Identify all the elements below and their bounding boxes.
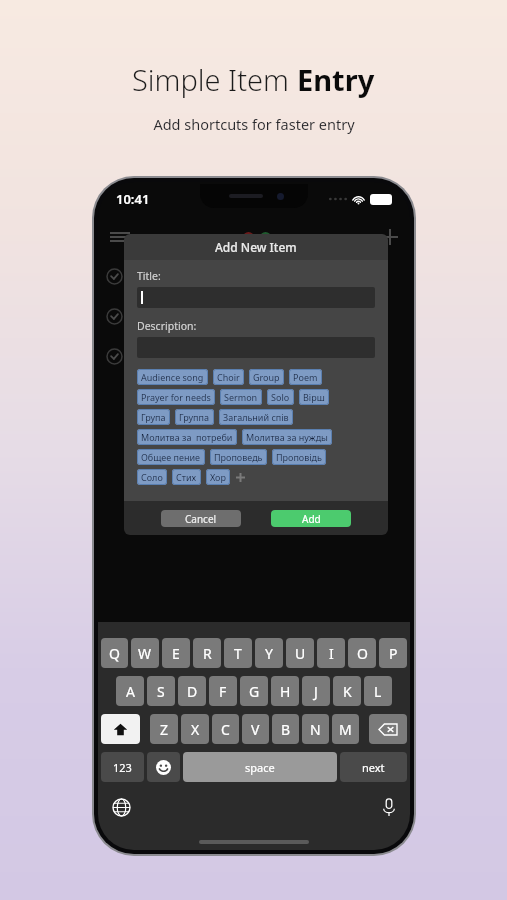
staticText: Общее пение	[141, 451, 201, 463]
button[interactable]: S	[147, 676, 175, 706]
staticText: Add New Item	[215, 239, 297, 255]
staticText: Description:	[137, 319, 197, 333]
staticText: P	[389, 644, 398, 663]
button[interactable]: Add tag	[235, 472, 246, 483]
button[interactable]: K	[333, 676, 361, 706]
staticText: 11/23/22	[191, 230, 237, 245]
button[interactable]: Poem	[289, 369, 322, 385]
button[interactable]: Хор	[206, 469, 230, 485]
staticText: Solo	[271, 391, 290, 403]
staticText: W	[138, 644, 152, 663]
button[interactable]: Q	[101, 638, 128, 668]
staticText: Add	[302, 512, 321, 526]
button[interactable]: Стих	[172, 469, 201, 485]
staticText: Group	[253, 371, 280, 383]
staticText: 10:41	[116, 190, 150, 208]
button[interactable]: G	[240, 676, 268, 706]
staticText: Группа	[179, 411, 210, 423]
staticText: Проповедь	[214, 451, 263, 463]
button[interactable]: Change keyboard language	[112, 798, 131, 817]
button[interactable]: Solo	[267, 389, 294, 405]
button[interactable]: F	[209, 676, 237, 706]
staticText: S	[157, 682, 165, 701]
button[interactable]: E	[162, 638, 190, 668]
button[interactable]: O	[348, 638, 376, 668]
button[interactable]: Choir	[213, 369, 244, 385]
button[interactable]: L	[364, 676, 392, 706]
button[interactable]: P	[379, 638, 407, 668]
button[interactable]: Загальний спів	[219, 409, 293, 425]
staticText: Z	[160, 720, 169, 739]
staticText: Entry	[297, 60, 375, 99]
staticText: Cancel	[185, 512, 217, 526]
staticText: Go Live	[332, 230, 370, 245]
button[interactable]: Z	[150, 714, 178, 744]
button[interactable]: Sermon	[220, 389, 262, 405]
staticText: Y	[265, 644, 273, 663]
button[interactable]: Menu	[110, 227, 130, 247]
button[interactable]: Shift	[101, 714, 140, 744]
staticText: B	[281, 720, 291, 739]
staticText: Sermon	[224, 391, 258, 403]
staticText: Title:	[137, 269, 161, 283]
button[interactable]: Dictate	[382, 798, 396, 817]
staticText: O	[357, 644, 368, 663]
button[interactable]: Молитва за нужды	[242, 429, 332, 445]
button[interactable]: A	[116, 676, 144, 706]
button[interactable]: M	[332, 714, 359, 744]
button[interactable]: Emoji	[147, 752, 180, 782]
staticText: Молитва за нужды	[246, 431, 328, 443]
button[interactable]: Y	[255, 638, 283, 668]
button[interactable]: Group	[249, 369, 284, 385]
staticText: Молитва за потреби	[141, 431, 233, 443]
button[interactable]: Add	[271, 510, 351, 527]
button[interactable]: C	[212, 714, 239, 744]
button[interactable]: V	[242, 714, 269, 744]
staticText: Prayer for needs	[141, 391, 211, 403]
staticText: Audience song	[141, 371, 204, 383]
button[interactable]: Группа	[175, 409, 214, 425]
staticText: E	[172, 644, 180, 663]
button[interactable]: H	[271, 676, 299, 706]
staticText: Q	[109, 644, 120, 663]
staticText: Choir	[217, 371, 240, 383]
button[interactable]: Проповедь	[210, 449, 267, 465]
button[interactable]: Add	[382, 229, 398, 245]
staticText: Соло	[141, 471, 163, 483]
button[interactable]: Prayer for needs	[137, 389, 215, 405]
button[interactable]: T	[224, 638, 252, 668]
staticText: D	[187, 682, 198, 701]
button[interactable]: X	[181, 714, 209, 744]
button[interactable]: N	[302, 714, 329, 744]
button[interactable]: Общее пение	[137, 449, 205, 465]
staticText: N	[310, 720, 321, 739]
button[interactable]: Backspace	[369, 714, 407, 744]
button[interactable]: 123	[101, 752, 144, 782]
staticText: M	[339, 720, 352, 739]
button[interactable]: W	[131, 638, 159, 668]
staticText: U	[295, 644, 306, 663]
staticText: J	[314, 682, 318, 701]
button[interactable]: Вірш	[299, 389, 329, 405]
button[interactable]: B	[272, 714, 299, 744]
staticText: Poem	[293, 371, 318, 383]
button[interactable]: Cancel	[161, 510, 241, 527]
button[interactable]: space	[183, 752, 337, 782]
staticText: X	[191, 720, 200, 739]
button[interactable]: U	[286, 638, 314, 668]
button[interactable]: Audience song	[137, 369, 208, 385]
button[interactable]: J	[302, 676, 330, 706]
button[interactable]	[137, 287, 375, 308]
button[interactable]: I	[317, 638, 345, 668]
staticText: V	[251, 720, 260, 739]
staticText: next	[362, 760, 385, 775]
button[interactable]: next	[340, 752, 407, 782]
button[interactable]: R	[193, 638, 221, 668]
button[interactable]: D	[178, 676, 206, 706]
button[interactable]: Соло	[137, 469, 167, 485]
button[interactable]: Група	[137, 409, 170, 425]
button[interactable]: Молитва за потреби	[137, 429, 237, 445]
button[interactable]: Проповідь	[272, 449, 326, 465]
staticText: Стих	[176, 471, 197, 483]
